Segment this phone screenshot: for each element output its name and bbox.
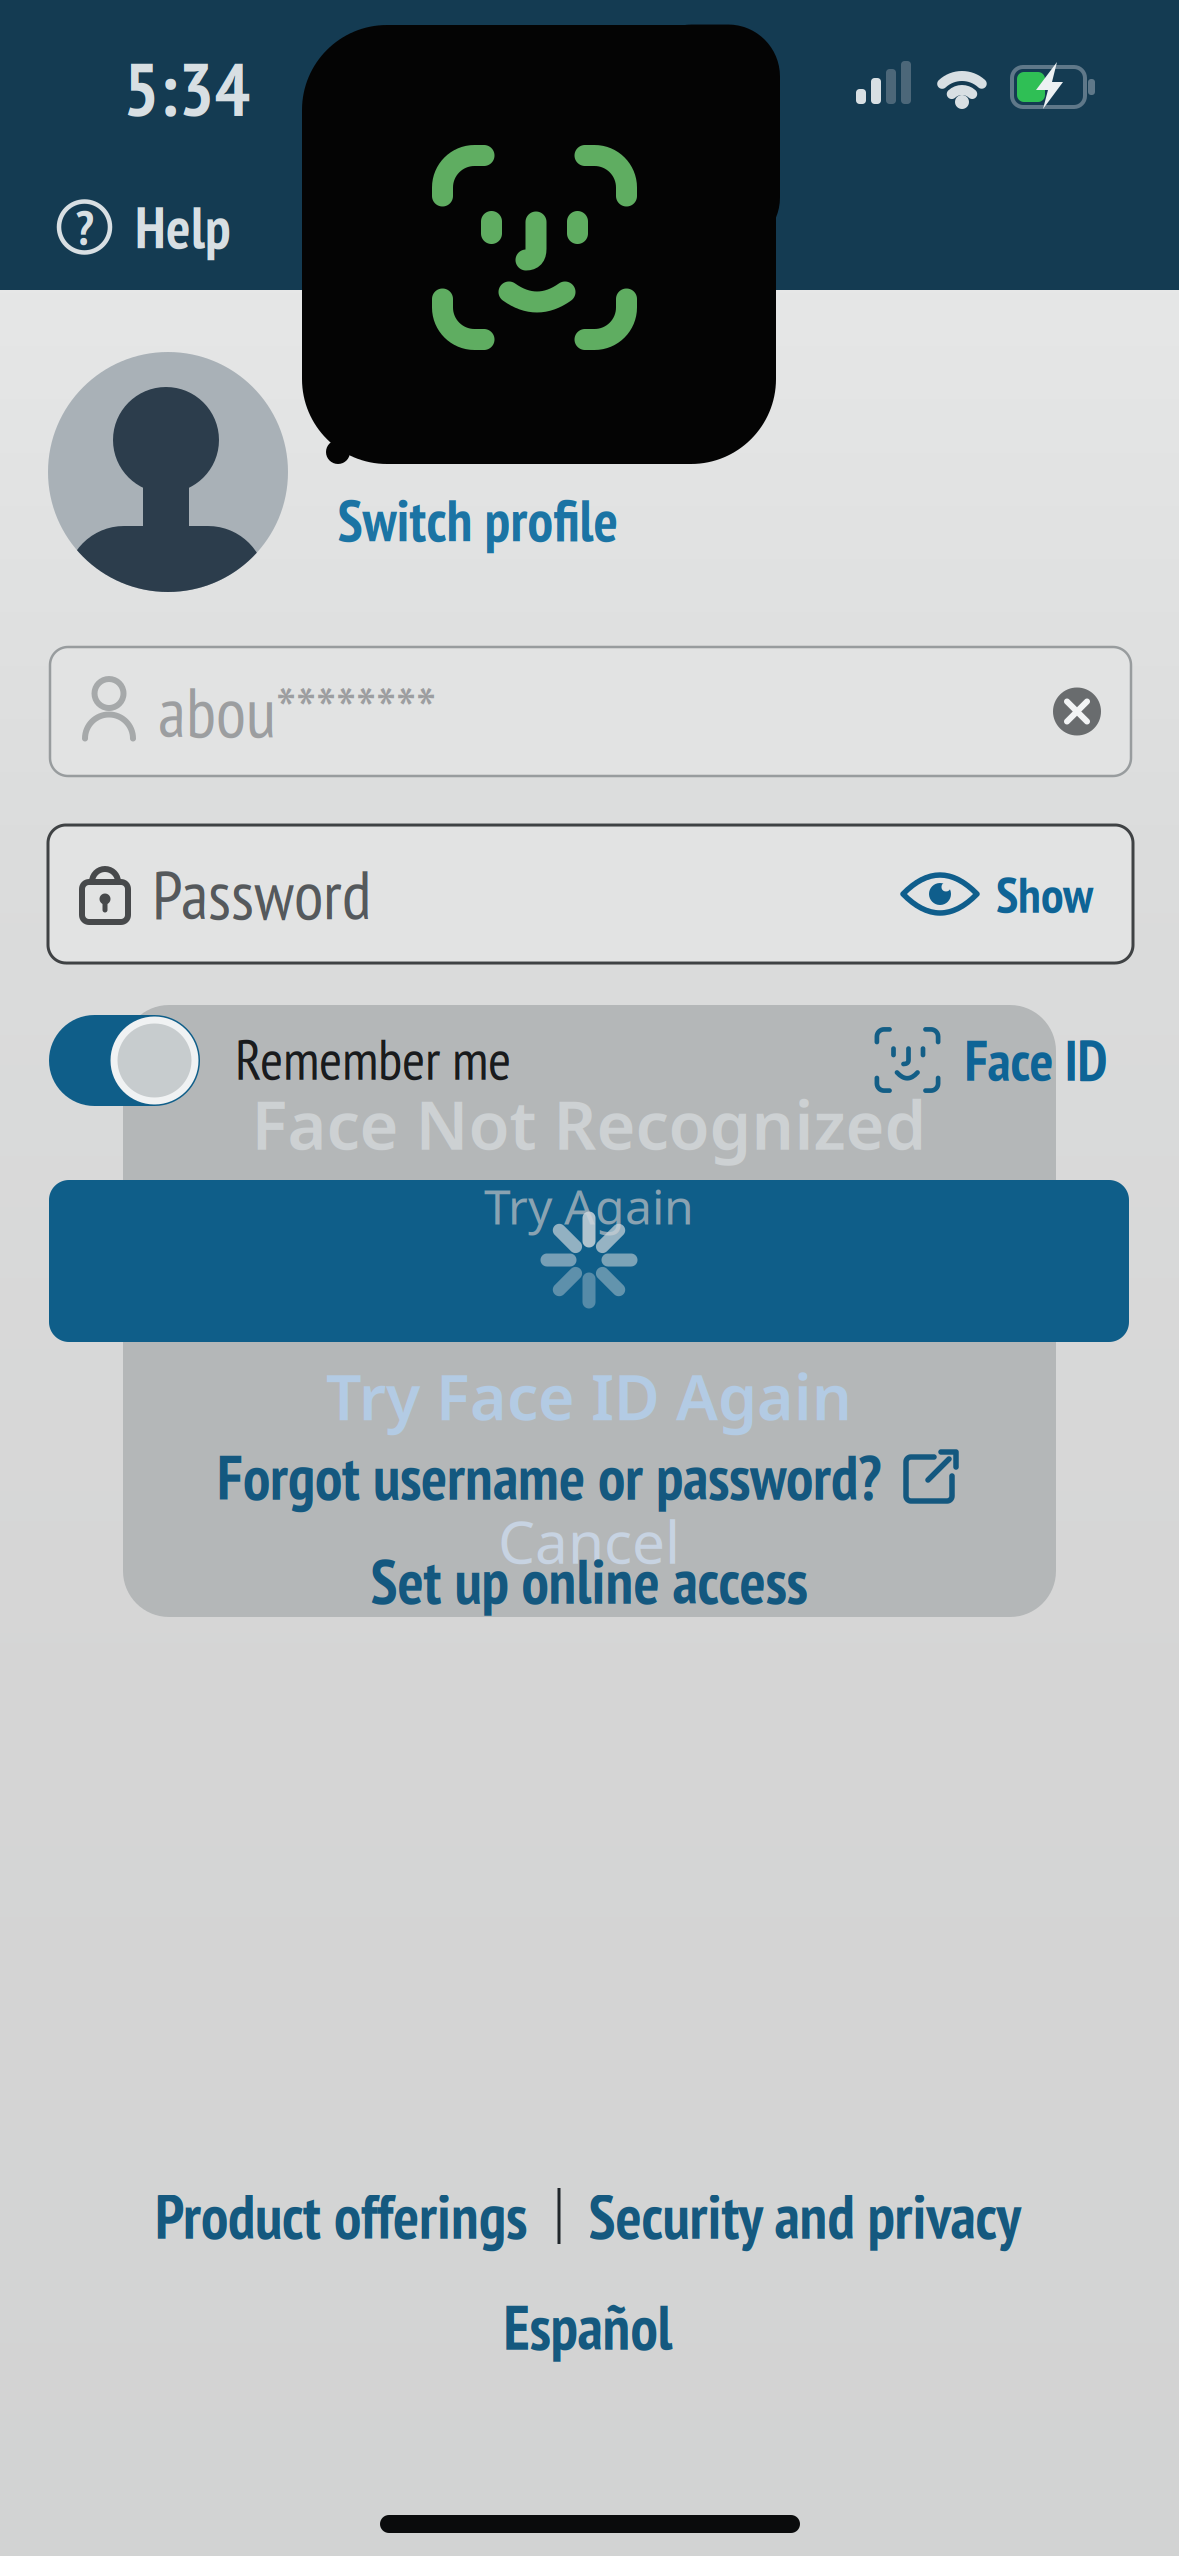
button[interactable]: ? [59,190,231,264]
button[interactable]: Try Face ID Again [326,1354,852,1438]
staticText: Try Again [484,1174,694,1238]
staticText: ? [75,196,93,258]
staticText: Set up online access [370,1541,807,1621]
staticText: Switch profile [337,483,618,557]
staticText: Show [996,861,1093,927]
staticText: Password [152,850,371,938]
button[interactable]: Switch profile [337,483,618,557]
staticText: Face Not Recognized [251,1080,926,1168]
button[interactable]: Show password [900,861,1093,927]
staticText: abou******** [158,667,436,756]
button[interactable]: Forgot username or password? [217,1437,959,1517]
staticText: Try Face ID Again [326,1354,852,1438]
staticText: Security and privacy [588,2176,1021,2256]
staticText: Remember me [235,1023,511,1095]
button[interactable]: Product offerings [155,2176,527,2256]
staticText: Español [503,2287,672,2367]
button[interactable]: Face ID [874,1024,1107,1096]
staticText: 5:34 [123,40,250,136]
button[interactable]: Log in [49,1180,1129,1342]
staticText: Face ID [964,1024,1107,1096]
button[interactable]: Remember me [49,1015,200,1106]
button[interactable]: Set up online access [370,1541,807,1621]
button[interactable]: Security and privacy [588,2176,1021,2256]
staticText: Forgot username or password? [217,1437,881,1517]
staticText: Product offerings [155,2176,527,2256]
button[interactable]: Cancel [498,1502,680,1580]
staticText: Help [135,190,231,264]
button[interactable]: Clear username [1053,687,1101,735]
staticText: Cancel [498,1502,680,1580]
button[interactable]: Español [503,2287,672,2367]
